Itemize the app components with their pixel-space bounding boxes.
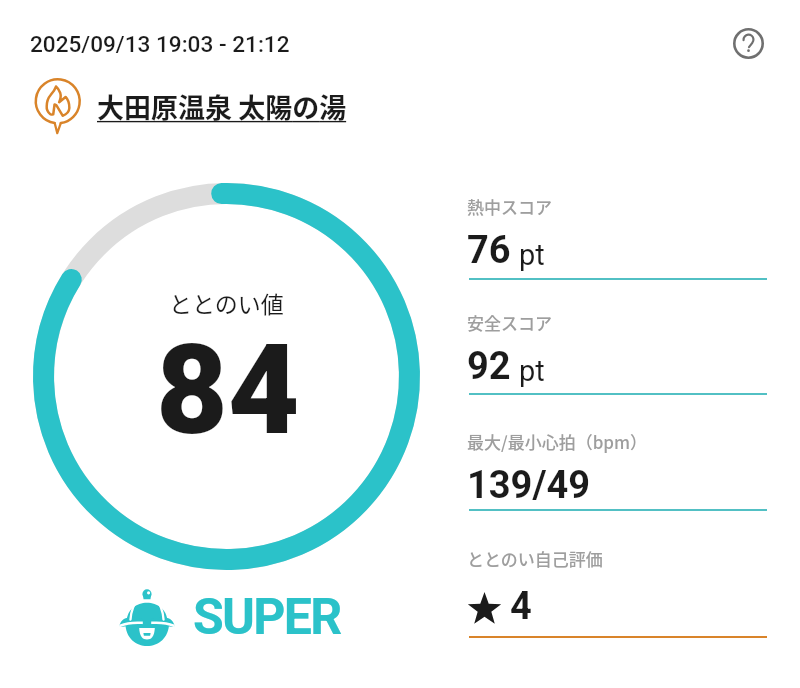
- button[interactable]: [467, 540, 767, 642]
- button[interactable]: Help: [726, 21, 770, 65]
- staticText: 139/49: [467, 463, 591, 508]
- staticText: SUPER: [193, 588, 341, 647]
- staticText: 最大/最小心拍（bpm）: [467, 429, 648, 454]
- staticText: pt: [519, 354, 545, 388]
- button[interactable]: [467, 423, 767, 515]
- button[interactable]: 大田原温泉 太陽の湯: [28, 74, 347, 134]
- staticText: ととのい値: [169, 286, 284, 319]
- staticText: 4: [510, 584, 532, 629]
- staticText: 安全スコア: [467, 310, 552, 335]
- staticText: pt: [519, 238, 545, 272]
- button[interactable]: [467, 304, 767, 399]
- staticText: 92: [467, 344, 511, 389]
- staticText: 熱中スコア: [467, 194, 552, 219]
- button[interactable]: SUPER: [119, 587, 341, 646]
- staticText: 84: [156, 318, 300, 463]
- staticText: 2025/09/13 19:03 - 21:12: [30, 31, 290, 57]
- staticText: 大田原温泉 太陽の湯: [97, 87, 347, 126]
- button[interactable]: [467, 188, 767, 284]
- staticText: ととのい自己評価: [467, 546, 603, 571]
- staticText: 76: [467, 228, 511, 273]
